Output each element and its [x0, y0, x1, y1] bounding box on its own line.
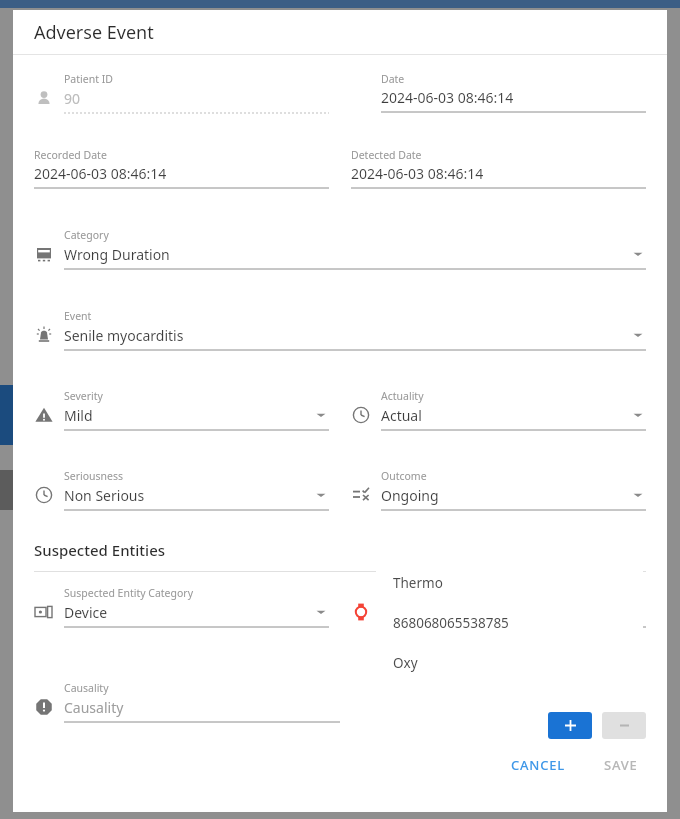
- staticText: Seriousness: [64, 469, 124, 483]
- button[interactable]: Date: [351, 72, 646, 113]
- button[interactable]: Detected Date: [351, 148, 646, 189]
- staticText: 2024-06-03 08:46:14: [34, 164, 167, 183]
- staticText: Event: [64, 309, 92, 323]
- button[interactable]: Event: [34, 309, 646, 351]
- button[interactable]: Seriousness: [34, 469, 329, 511]
- staticText: Severity: [64, 389, 103, 403]
- staticText: 90: [64, 89, 81, 108]
- staticText: Suspected Entity: [381, 586, 463, 600]
- staticText: 868068065538785: [393, 614, 509, 632]
- staticText: Causality: [64, 681, 109, 695]
- staticText: Suspected Entities: [34, 540, 166, 560]
- button[interactable]: CANCEL: [503, 750, 574, 780]
- staticText: Recorded Date: [34, 148, 107, 162]
- button[interactable]: Thermo: [376, 563, 643, 603]
- staticText: Mild: [64, 406, 93, 425]
- button[interactable]: Outcome: [351, 469, 646, 511]
- staticText: Adverse Event: [34, 20, 154, 45]
- staticText: Actuality: [381, 389, 424, 403]
- staticText: Non Serious: [64, 486, 145, 505]
- staticText: Wrong Duration: [64, 245, 170, 264]
- staticText: Suspected Entity Category: [64, 586, 194, 600]
- staticText: Patient ID: [64, 72, 113, 86]
- staticText: Category: [64, 228, 109, 242]
- button[interactable]: Category: [34, 228, 646, 270]
- button[interactable]: SAVE: [596, 750, 646, 780]
- staticText: Outcome: [381, 469, 427, 483]
- button[interactable]: Suspected Entity: [351, 586, 646, 628]
- staticText: SAVE: [604, 756, 638, 774]
- button[interactable]: Actuality: [351, 389, 646, 431]
- button[interactable]: Severity: [34, 389, 329, 431]
- button[interactable]: Recorded Date: [34, 148, 329, 189]
- button[interactable]: Add suspected entity: [548, 712, 592, 739]
- staticText: 2024-06-03 08:46:14: [351, 164, 484, 183]
- staticText: Date: [381, 72, 405, 86]
- staticText: Senile myocarditis: [64, 326, 184, 345]
- staticText: CANCEL: [511, 756, 566, 774]
- staticText: 2024-06-03 08:46:14: [381, 88, 514, 107]
- staticText: Device: [64, 603, 108, 622]
- button[interactable]: Patient ID: [34, 72, 329, 114]
- staticText: Ongoing: [381, 486, 439, 505]
- button[interactable]: Causality: [34, 681, 340, 723]
- staticText: Detected Date: [351, 148, 422, 162]
- staticText: Causality: [64, 698, 124, 717]
- button[interactable]: Oxy: [376, 643, 643, 683]
- button[interactable]: 868068065538785: [376, 603, 643, 643]
- staticText: Thermo: [393, 574, 443, 592]
- staticText: Actual: [381, 406, 422, 425]
- button[interactable]: Remove suspected entity: [602, 712, 646, 739]
- staticText: Oxy: [393, 654, 418, 672]
- button[interactable]: Suspected Entity Category: [34, 586, 329, 628]
